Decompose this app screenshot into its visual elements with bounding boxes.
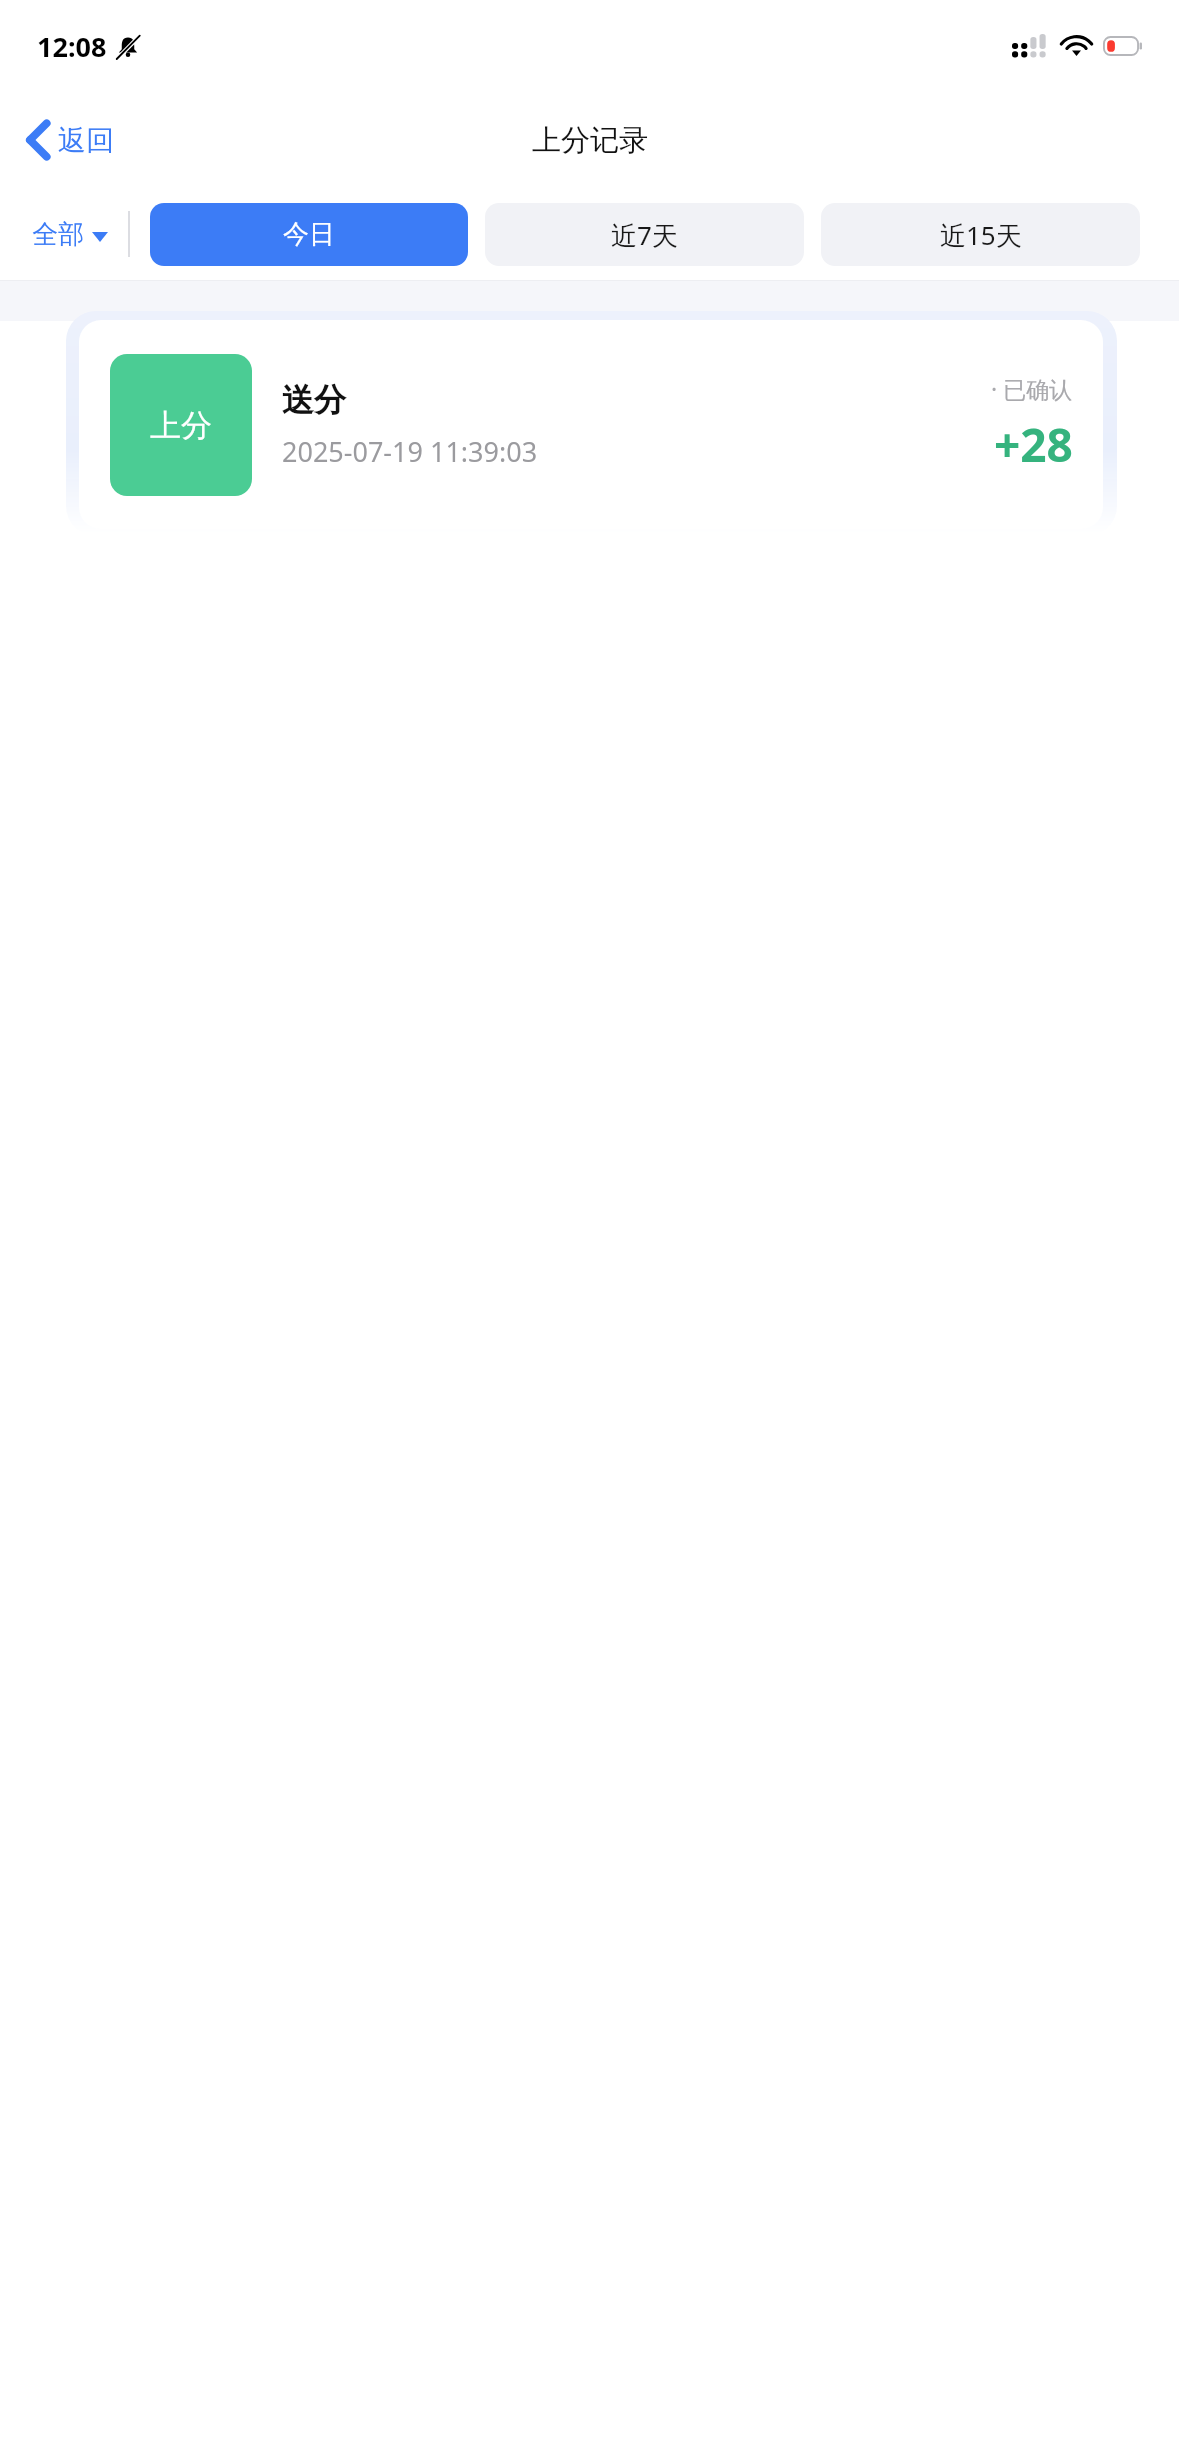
staticText: 上分 xyxy=(150,406,212,445)
button[interactable]: 今日 xyxy=(150,203,468,266)
button[interactable]: 全部 xyxy=(0,204,128,265)
staticText: 今日 xyxy=(283,218,335,251)
staticText: 2025-07-19 11:39:03 xyxy=(282,433,538,470)
button[interactable]: 近7天 xyxy=(485,203,804,266)
button[interactable]: Back xyxy=(0,106,134,174)
staticText: 返回 xyxy=(58,123,114,158)
button[interactable]: 上分 xyxy=(79,320,1103,529)
staticText: · 已确认 xyxy=(991,373,1073,404)
staticText: 近7天 xyxy=(611,217,678,253)
staticText: 12:08 xyxy=(37,28,107,65)
staticText: 近15天 xyxy=(940,217,1022,253)
staticText: 上分记录 xyxy=(532,122,648,159)
button[interactable]: 近15天 xyxy=(821,203,1140,266)
staticText: 送分 xyxy=(282,380,346,420)
staticText: +28 xyxy=(994,413,1073,476)
other: Back xyxy=(24,118,51,162)
staticText: 全部 xyxy=(32,218,84,251)
